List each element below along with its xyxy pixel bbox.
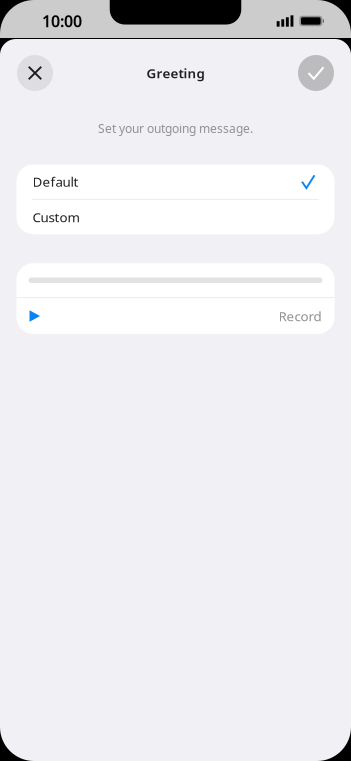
staticText: Greeting [146, 64, 204, 82]
staticText: 10:00 [42, 10, 82, 32]
button[interactable]: Done [298, 55, 334, 91]
button[interactable]: Default [16, 164, 334, 199]
staticText: Default [32, 173, 78, 190]
staticText: Custom [32, 208, 79, 226]
button[interactable]: Record [16, 298, 334, 334]
staticText: Set your outgoing message. [98, 120, 253, 136]
button[interactable]: Close [17, 55, 53, 91]
button[interactable]: Custom [16, 200, 334, 234]
staticText: Record [278, 307, 321, 325]
